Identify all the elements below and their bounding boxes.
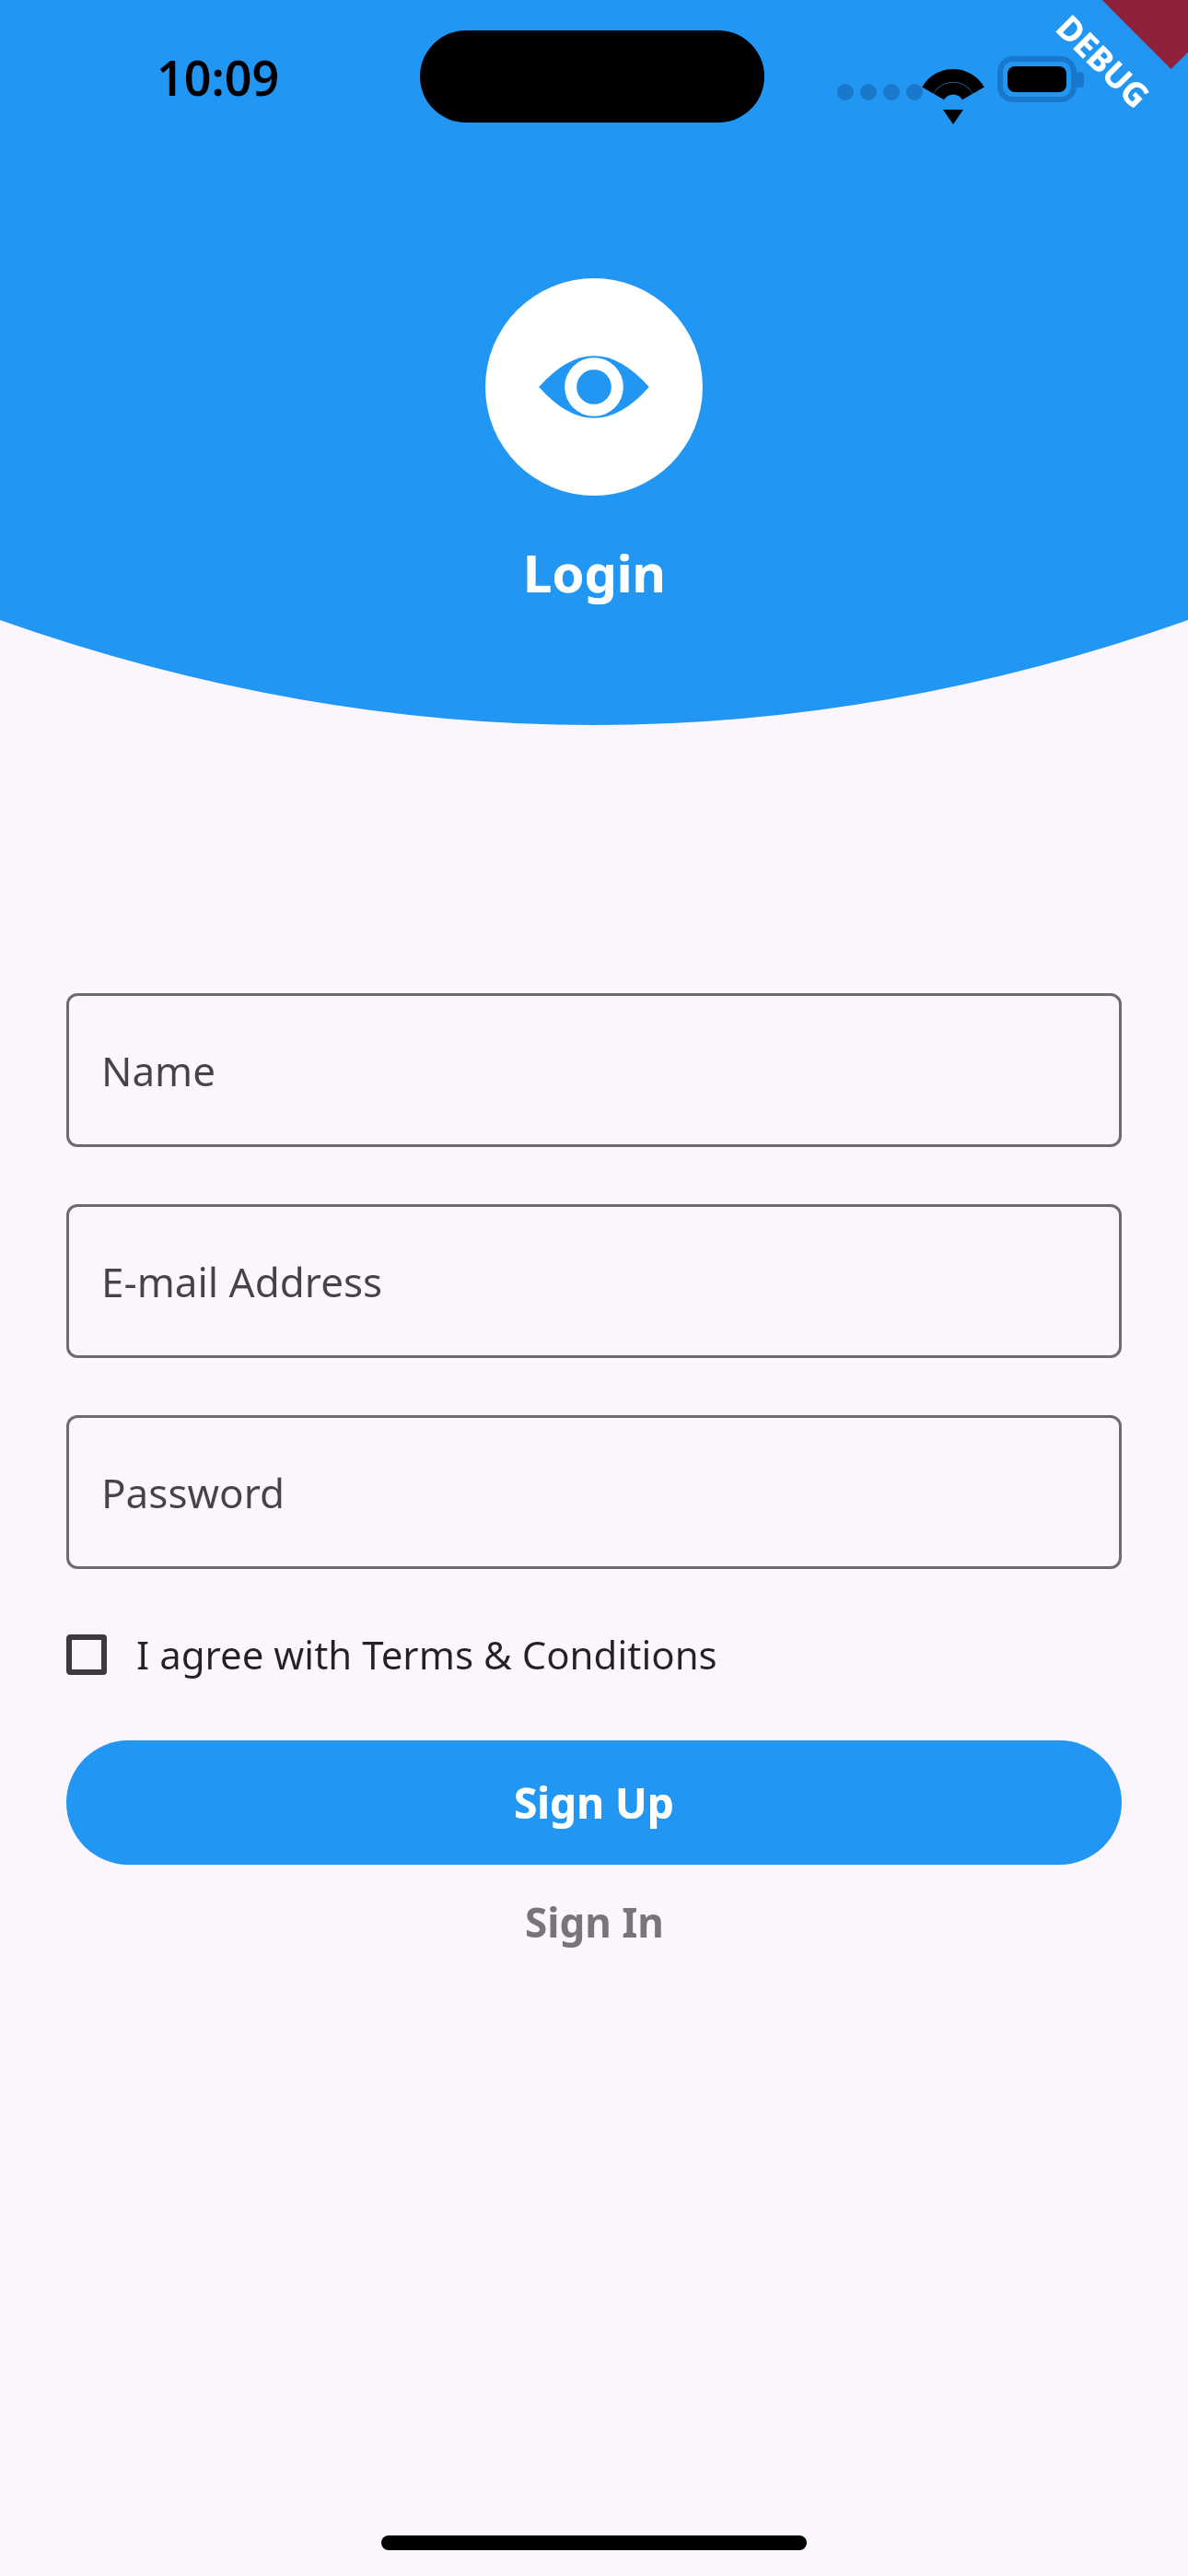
staticText: I agree with Terms & Conditions bbox=[136, 1628, 717, 1680]
staticText: Sign In bbox=[525, 1894, 664, 1950]
staticText: Login bbox=[523, 537, 666, 607]
button[interactable]: Sign Up bbox=[66, 1740, 1122, 1865]
button[interactable]: Name bbox=[66, 993, 1122, 1147]
staticText: Name bbox=[101, 1043, 216, 1098]
other: App logo bbox=[485, 278, 703, 496]
button[interactable]: Sign In bbox=[499, 1883, 690, 1961]
staticText: Sign Up bbox=[514, 1774, 674, 1832]
staticText: Password bbox=[101, 1465, 285, 1520]
button[interactable]: Password bbox=[66, 1415, 1122, 1569]
staticText: E-mail Address bbox=[101, 1254, 383, 1309]
staticText: DEBUG bbox=[1047, 5, 1160, 118]
button[interactable]: I agree with Terms & Conditions bbox=[59, 1617, 732, 1692]
button[interactable]: E-mail Address bbox=[66, 1204, 1122, 1358]
staticText: 10:09 bbox=[157, 44, 280, 110]
